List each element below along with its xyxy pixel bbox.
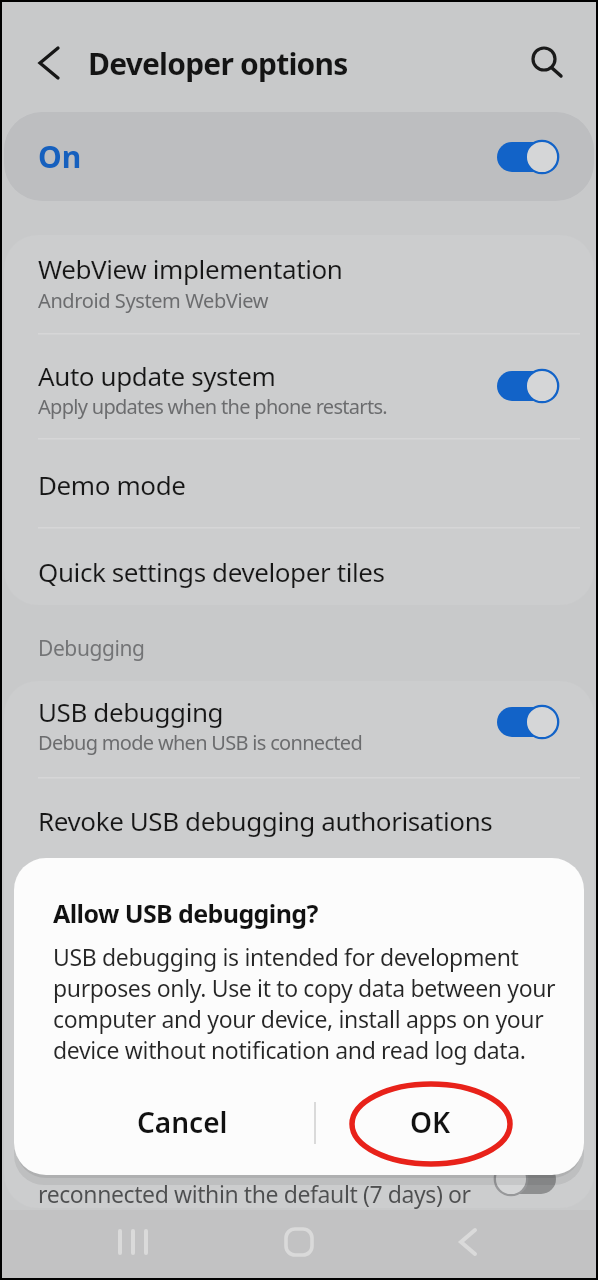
button[interactable] (439, 1214, 495, 1270)
button[interactable] (4, 343, 594, 453)
button[interactable] (522, 38, 570, 86)
button[interactable] (496, 1162, 559, 1196)
staticText: USB debugging (38, 694, 224, 729)
button[interactable] (105, 1214, 161, 1270)
staticText: Cancel (137, 1103, 228, 1141)
staticText: Developer options (88, 43, 348, 84)
staticText: Apply updates when the phone restarts. (38, 393, 387, 420)
button[interactable]: OK (330, 1096, 530, 1148)
button[interactable] (4, 789, 594, 877)
button[interactable] (4, 235, 594, 343)
staticText: Debugging (38, 634, 145, 663)
staticText: Auto update system (38, 358, 276, 393)
button[interactable]: Cancel (82, 1096, 282, 1148)
button[interactable] (497, 369, 560, 403)
button[interactable] (4, 681, 594, 789)
button[interactable] (497, 140, 560, 174)
staticText: OK (410, 1103, 451, 1141)
staticText: Demo mode (38, 467, 186, 502)
staticText: USB debugging is intended for developmen… (53, 941, 556, 1065)
staticText: Android System WebView (38, 287, 268, 314)
staticText: WebView implementation (38, 251, 343, 286)
staticText: On (38, 136, 82, 177)
button[interactable]: On (4, 112, 594, 201)
button[interactable] (271, 1214, 327, 1270)
button[interactable] (4, 541, 594, 605)
staticText: Debug mode when USB is connected (38, 729, 362, 756)
staticText: Quick settings developer tiles (38, 554, 385, 589)
staticText: Revoke USB debugging authorisations (38, 803, 493, 838)
staticText: reconnected within the default (7 days) … (38, 1178, 471, 1209)
button[interactable] (26, 38, 74, 86)
button[interactable] (4, 453, 594, 541)
button[interactable] (497, 705, 560, 739)
staticText: Allow USB debugging? (53, 896, 318, 930)
